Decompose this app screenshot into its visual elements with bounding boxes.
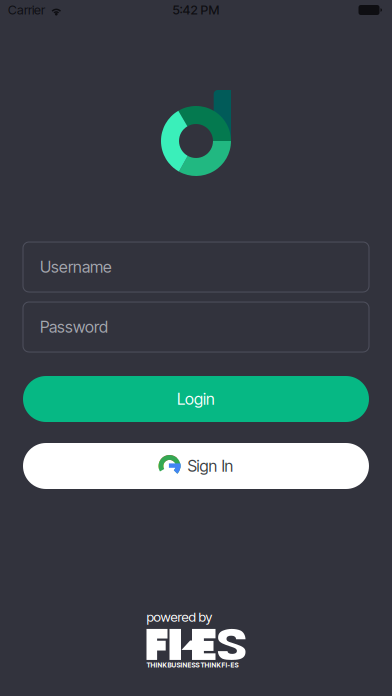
staticText: THINK BUSINESS THINK FI-ES bbox=[146, 661, 238, 669]
button[interactable]: Login bbox=[23, 376, 369, 422]
staticText: Username bbox=[40, 257, 112, 277]
button[interactable]: Sign In bbox=[23, 443, 369, 489]
staticText: Sign In bbox=[187, 456, 233, 476]
staticText: powered by bbox=[146, 609, 212, 625]
staticText: Password bbox=[40, 317, 108, 337]
button[interactable]: Username bbox=[23, 242, 369, 292]
staticText: Carrier bbox=[8, 2, 45, 18]
staticText: Login bbox=[177, 389, 215, 409]
staticText: 5:42 PM bbox=[172, 2, 219, 18]
button[interactable]: Password bbox=[23, 302, 369, 352]
